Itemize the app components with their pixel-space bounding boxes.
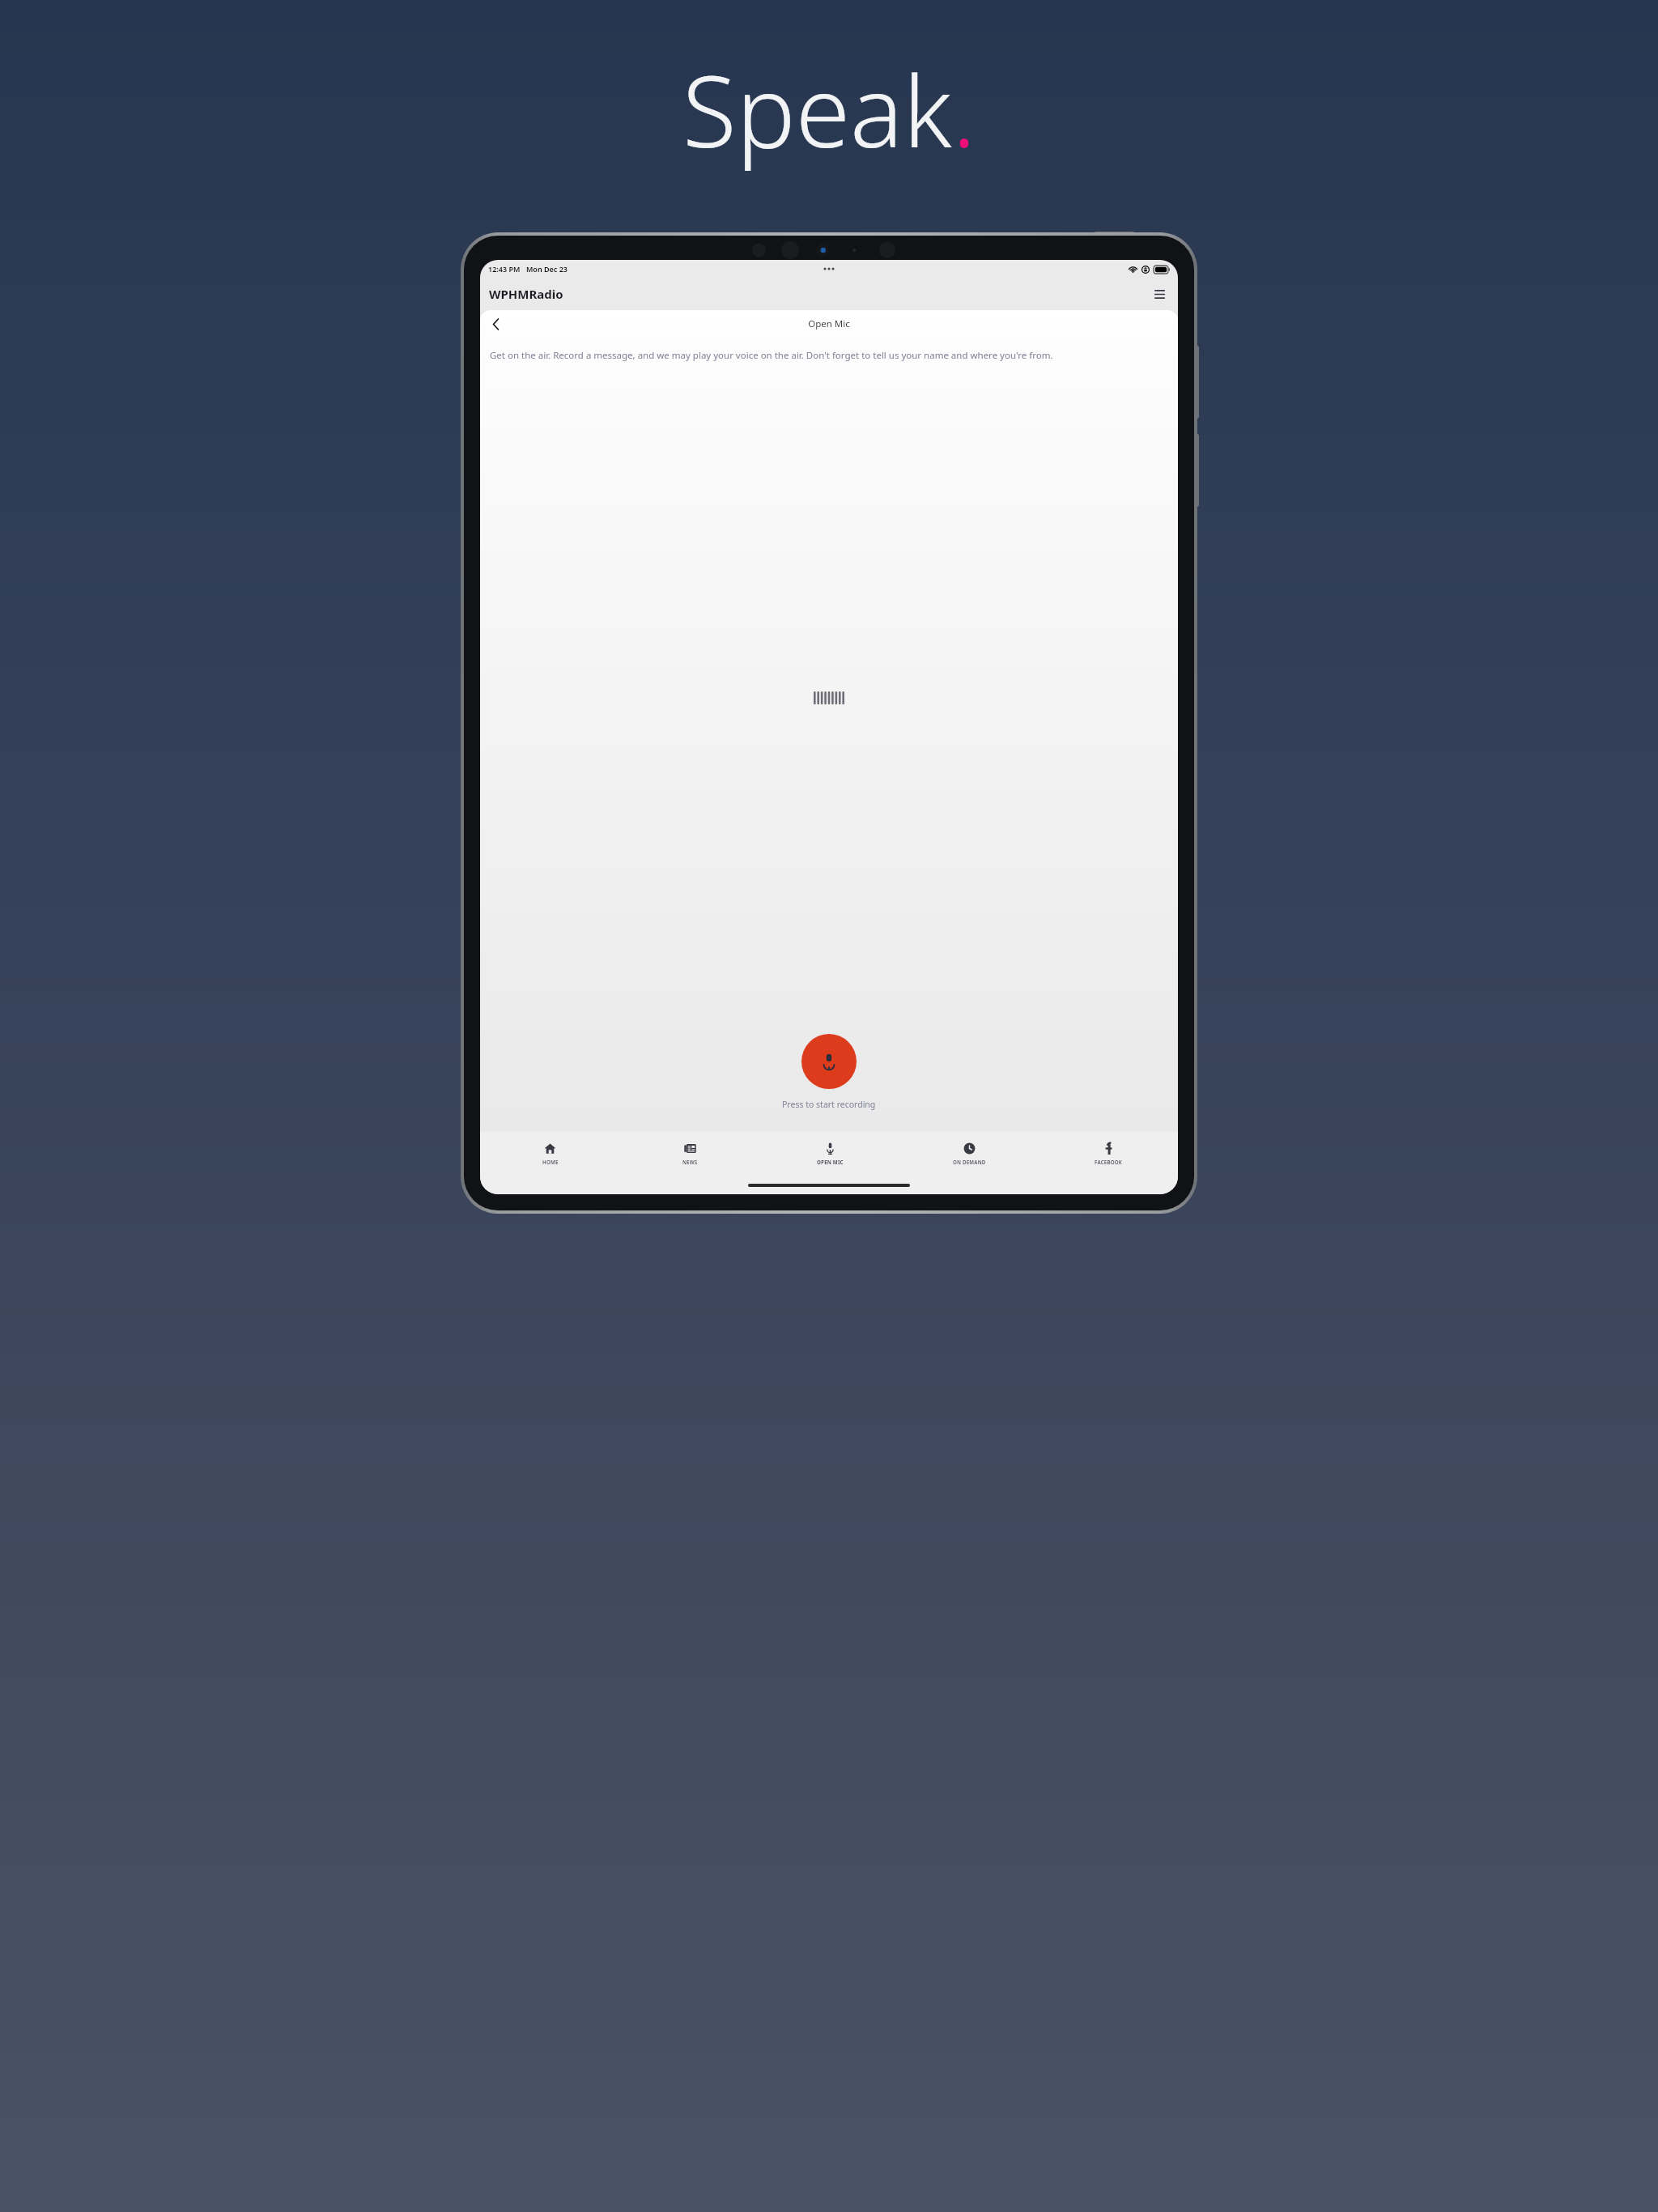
staticText: Get on the air. Record a message, and we… bbox=[490, 349, 1053, 362]
staticText: . bbox=[952, 42, 976, 177]
button[interactable]: ON DEMAND bbox=[899, 1131, 1039, 1176]
button[interactable]: NEWS bbox=[620, 1131, 760, 1176]
staticText: ON DEMAND bbox=[953, 1159, 986, 1165]
staticText: Mon Dec 23 bbox=[526, 264, 568, 274]
staticText: Open Mic bbox=[808, 317, 850, 330]
button[interactable]: Press to start recording bbox=[801, 1034, 857, 1089]
staticText: FACEBOOK bbox=[1095, 1159, 1123, 1165]
button[interactable]: FACEBOOK bbox=[1039, 1131, 1178, 1176]
staticText: NEWS bbox=[682, 1159, 698, 1165]
staticText: Press to start recording bbox=[782, 1099, 876, 1110]
staticText: Speak bbox=[682, 42, 952, 177]
button[interactable]: OPEN MIC bbox=[760, 1131, 899, 1176]
button[interactable]: HOME bbox=[480, 1131, 620, 1176]
staticText: WPHMRadio bbox=[489, 286, 563, 302]
button[interactable]: Back bbox=[483, 312, 508, 336]
staticText: 12:43 PM bbox=[488, 264, 521, 274]
button[interactable]: Open navigation menu bbox=[1147, 282, 1171, 306]
staticText: OPEN MIC bbox=[817, 1159, 844, 1165]
staticText: HOME bbox=[542, 1159, 559, 1165]
